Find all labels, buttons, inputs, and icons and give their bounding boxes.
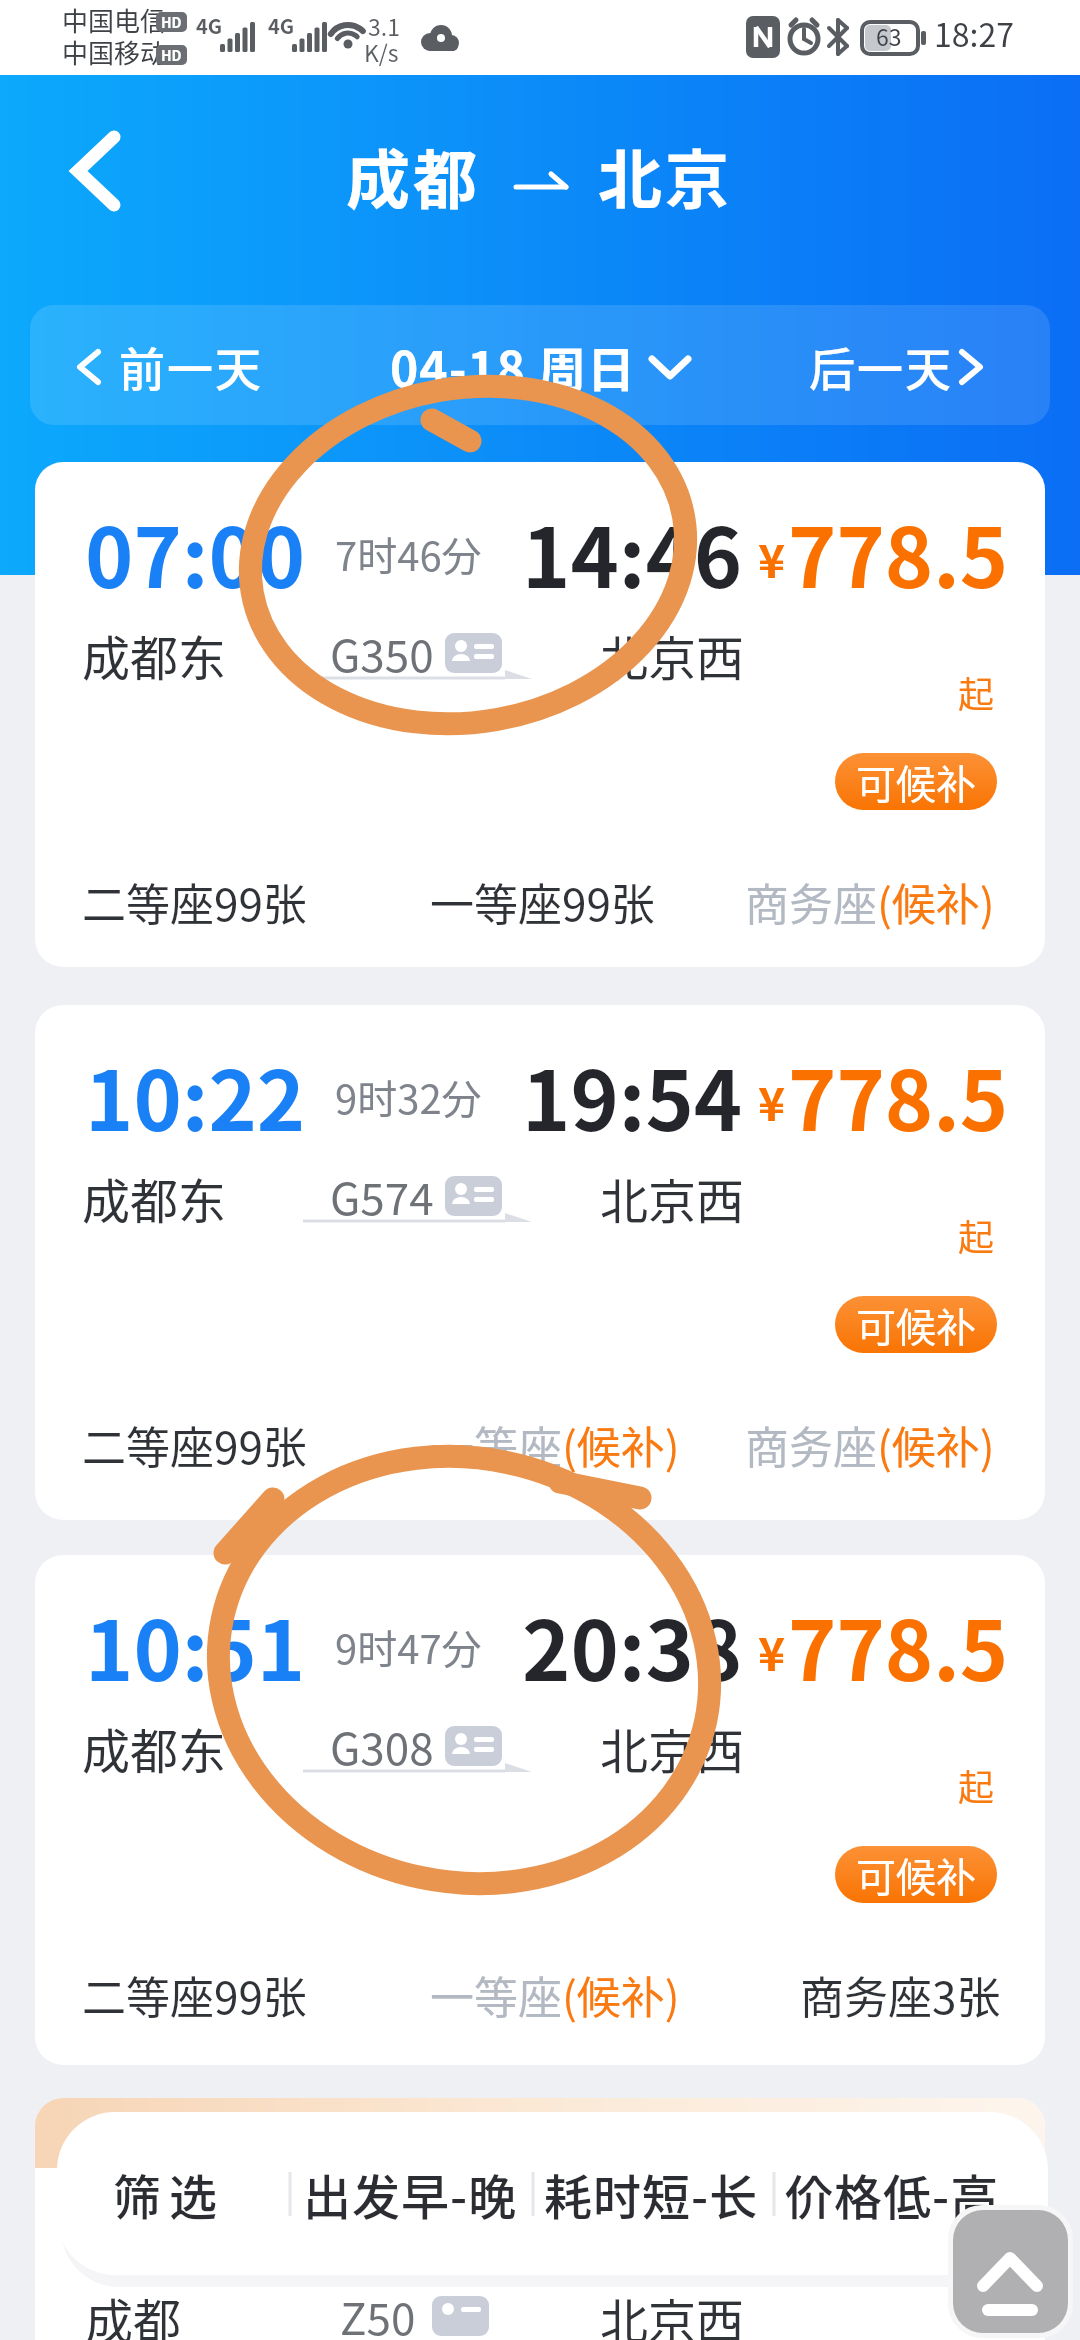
staticText: 7时46分 [335, 525, 482, 583]
staticText: 中国移动 [62, 33, 167, 71]
staticText: 北京西 [600, 1163, 745, 1233]
button[interactable] [35, 1555, 1045, 2065]
staticText: 耗时短-长 [544, 2159, 759, 2229]
staticText: 成都东 [82, 1163, 227, 1233]
staticText: 可候补 [856, 1296, 976, 1353]
staticText: 商务座 [745, 870, 877, 934]
staticText: 9时32分 [335, 1068, 482, 1126]
staticText: 起 [958, 1209, 995, 1261]
staticText: 4G [268, 11, 295, 40]
staticText: 9时47分 [335, 1618, 482, 1676]
staticText: 中国电信 [62, 1, 167, 39]
staticText: 14:46 [522, 493, 743, 612]
staticText: ¥ [758, 1068, 786, 1135]
staticText: ¥ [758, 1618, 786, 1685]
staticText: 4G [196, 11, 223, 40]
staticText: 10:51 [85, 1586, 306, 1705]
staticText: (候补) [562, 1963, 680, 2027]
staticText: 可候补 [856, 753, 976, 810]
staticText: 北京 [598, 129, 732, 222]
button[interactable] [760, 315, 1040, 415]
staticText: 北京西 [600, 620, 745, 690]
staticText: 北京西 [600, 2283, 745, 2340]
button[interactable]: 可候补 [835, 753, 997, 810]
staticText: 后一天 [808, 333, 952, 400]
button[interactable] [50, 120, 160, 230]
staticText: 一等座 [430, 1413, 562, 1477]
staticText: 二等座99张 [82, 1963, 307, 2027]
button[interactable] [35, 462, 1045, 967]
staticText: 成都 [85, 2283, 182, 2340]
staticText: HD [161, 45, 182, 65]
staticText: 起 [958, 666, 995, 718]
button[interactable] [780, 2130, 1010, 2260]
button[interactable] [300, 2130, 530, 2260]
staticText: (候补) [877, 1413, 995, 1477]
button[interactable] [35, 1005, 1045, 1520]
staticText: 筛选 [113, 2159, 226, 2229]
button[interactable] [953, 2210, 1068, 2333]
staticText: 出发早-晚 [303, 2159, 518, 2229]
staticText: 18:27 [934, 10, 1014, 56]
staticText: HD [161, 12, 182, 32]
staticText: 3.1 [368, 9, 400, 42]
staticText: 价格低-高 [785, 2159, 1000, 2229]
staticText: G308 [330, 1714, 434, 1778]
staticText: 63 [876, 19, 902, 52]
staticText: (候补) [877, 870, 995, 934]
staticText: 商务座3张 [800, 1963, 1001, 2027]
staticText: 一等座99张 [430, 870, 655, 934]
staticText: 二等座99张 [82, 870, 307, 934]
staticText: 二等座99张 [82, 1413, 307, 1477]
staticText: 前一天 [118, 333, 262, 400]
staticText: 778.5 [788, 493, 1009, 612]
staticText: (候补) [562, 1413, 680, 1477]
button[interactable] [40, 315, 320, 415]
staticText: 10:22 [85, 1036, 306, 1155]
staticText: 成都 [346, 129, 480, 222]
staticText: 商务座 [745, 1413, 877, 1477]
staticText: 可候补 [856, 1846, 976, 1903]
button[interactable]: 可候补 [835, 1296, 997, 1353]
button[interactable] [540, 2130, 770, 2260]
staticText: 20:38 [522, 1586, 743, 1705]
staticText: K/s [364, 35, 399, 68]
staticText: 778.5 [788, 1036, 1009, 1155]
staticText: 778.5 [788, 1586, 1009, 1705]
staticText: 19:54 [522, 1036, 743, 1155]
staticText: 北京西 [600, 1713, 745, 1783]
button[interactable] [80, 2130, 290, 2260]
button[interactable] [360, 315, 710, 415]
button[interactable]: 可候补 [835, 1846, 997, 1903]
staticText: ¥ [758, 525, 786, 592]
staticText: 起 [958, 1759, 995, 1811]
staticText: G574 [330, 1164, 434, 1228]
staticText: 成都东 [82, 620, 227, 690]
staticText: 04-18 周日 [390, 331, 636, 401]
staticText: 一等座 [430, 1963, 562, 2027]
staticText: Z50 [340, 2284, 416, 2340]
staticText: 07:00 [85, 493, 306, 612]
staticText: G350 [330, 621, 434, 685]
staticText: 成都东 [82, 1713, 227, 1783]
